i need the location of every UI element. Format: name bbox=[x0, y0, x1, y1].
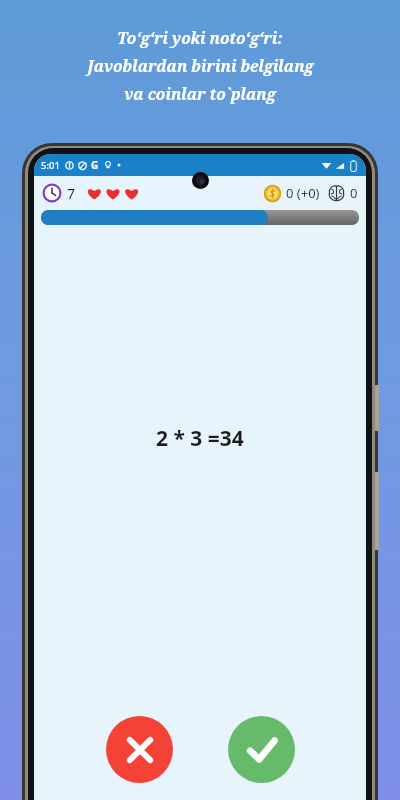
staticText: G bbox=[91, 158, 99, 172]
staticText: Javoblardan birini belgilang bbox=[87, 55, 314, 76]
staticText: 0 bbox=[350, 184, 358, 202]
staticText: 5:01 bbox=[41, 159, 60, 172]
staticText: 7 bbox=[67, 184, 76, 203]
staticText: 0 (+0) bbox=[286, 184, 320, 202]
button[interactable]: Noto'g'ri bbox=[106, 716, 173, 783]
staticText: va coinlar to`plang bbox=[124, 83, 276, 104]
staticText: To‘g‘ri yoki noto‘g‘ri: bbox=[117, 27, 283, 48]
staticText: 2 * 3 =34 bbox=[156, 424, 244, 453]
button[interactable]: To'g'ri bbox=[228, 716, 295, 783]
